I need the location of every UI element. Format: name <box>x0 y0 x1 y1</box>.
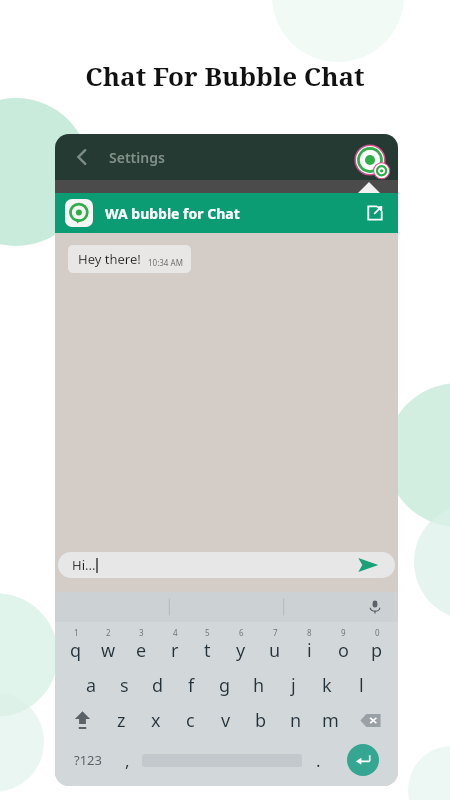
staticText: . <box>316 749 321 772</box>
button[interactable]: 3 <box>125 626 158 664</box>
button[interactable]: , <box>113 740 142 780</box>
staticText: s <box>120 673 129 698</box>
button[interactable]: Hi... <box>58 552 395 578</box>
button[interactable]: d <box>141 672 174 698</box>
button[interactable]: s <box>108 672 141 698</box>
staticText: p <box>371 638 383 663</box>
button[interactable]: Chat bubble <box>352 142 392 182</box>
staticText: v <box>221 708 231 733</box>
staticText: 2 <box>106 627 111 638</box>
staticText: c <box>186 708 195 733</box>
staticText: 6 <box>239 627 244 638</box>
staticText: x <box>151 708 161 733</box>
staticText: h <box>253 673 265 698</box>
staticText: 9 <box>341 627 346 638</box>
staticText: g <box>219 673 231 698</box>
button[interactable]: 0 <box>360 626 394 664</box>
button[interactable]: 4 <box>158 626 191 664</box>
button[interactable]: n <box>278 706 313 734</box>
staticText: 1 <box>74 627 79 638</box>
button[interactable]: 7 <box>258 626 292 664</box>
button[interactable]: Shift <box>60 706 104 734</box>
staticText: WA bubble for Chat <box>105 204 240 223</box>
staticText: m <box>322 708 339 733</box>
staticText: Settings <box>109 148 165 167</box>
staticText: Hi... <box>72 556 96 574</box>
staticText: y <box>236 638 246 663</box>
button[interactable]: z <box>104 706 138 734</box>
button[interactable]: 8 <box>292 626 326 664</box>
staticText: u <box>269 638 281 663</box>
button[interactable]: v <box>208 706 243 734</box>
staticText: n <box>290 708 302 733</box>
staticText: t <box>204 638 211 663</box>
button[interactable]: 1 <box>59 626 92 664</box>
staticText: Chat For Bubble Chat <box>0 58 450 93</box>
staticText: j <box>291 673 296 698</box>
button[interactable]: k <box>310 672 344 698</box>
button[interactable]: Back <box>69 144 95 170</box>
staticText: e <box>136 638 147 663</box>
staticText: b <box>255 708 267 733</box>
button[interactable]: Voice input <box>364 596 386 618</box>
staticText: 8 <box>307 627 312 638</box>
button[interactable]: 6 <box>224 626 258 664</box>
button[interactable]: ?123 <box>63 740 113 780</box>
staticText: l <box>359 673 364 698</box>
button[interactable]: Send <box>355 552 381 578</box>
button[interactable]: Hey there! <box>68 245 191 273</box>
button[interactable]: 9 <box>326 626 360 664</box>
staticText: i <box>307 638 312 663</box>
button[interactable]: Enter <box>347 744 379 776</box>
button[interactable]: h <box>242 672 276 698</box>
staticText: w <box>101 638 116 663</box>
staticText: 3 <box>139 627 144 638</box>
button[interactable]: j <box>276 672 310 698</box>
staticText: a <box>86 673 97 698</box>
staticText: k <box>322 673 332 698</box>
button[interactable]: WA bubble for Chat <box>55 193 398 233</box>
button[interactable]: Backspace <box>348 706 393 734</box>
button[interactable]: m <box>313 706 348 734</box>
button[interactable]: x <box>138 706 173 734</box>
button[interactable]: 5 <box>191 626 224 664</box>
button[interactable]: 2 <box>92 626 125 664</box>
button[interactable]: Open in app <box>362 200 388 226</box>
button[interactable]: f <box>174 672 208 698</box>
staticText: 10:34 AM <box>148 257 183 268</box>
staticText: o <box>338 638 349 663</box>
button[interactable]: l <box>344 672 378 698</box>
staticText: , <box>125 749 130 772</box>
staticText: d <box>152 673 164 698</box>
staticText: r <box>171 638 179 663</box>
staticText: 0 <box>375 627 380 638</box>
button[interactable]: a <box>75 672 108 698</box>
button[interactable]: g <box>208 672 242 698</box>
button[interactable]: b <box>243 706 278 734</box>
staticText: Hey there! <box>78 250 141 268</box>
staticText: 7 <box>273 627 278 638</box>
staticText: 5 <box>205 627 210 638</box>
staticText: f <box>188 673 195 698</box>
staticText: ?123 <box>74 751 102 769</box>
staticText: 4 <box>173 627 178 638</box>
button[interactable]: . <box>302 740 335 780</box>
staticText: q <box>70 638 82 663</box>
staticText: z <box>117 708 126 733</box>
button[interactable]: c <box>173 706 208 734</box>
